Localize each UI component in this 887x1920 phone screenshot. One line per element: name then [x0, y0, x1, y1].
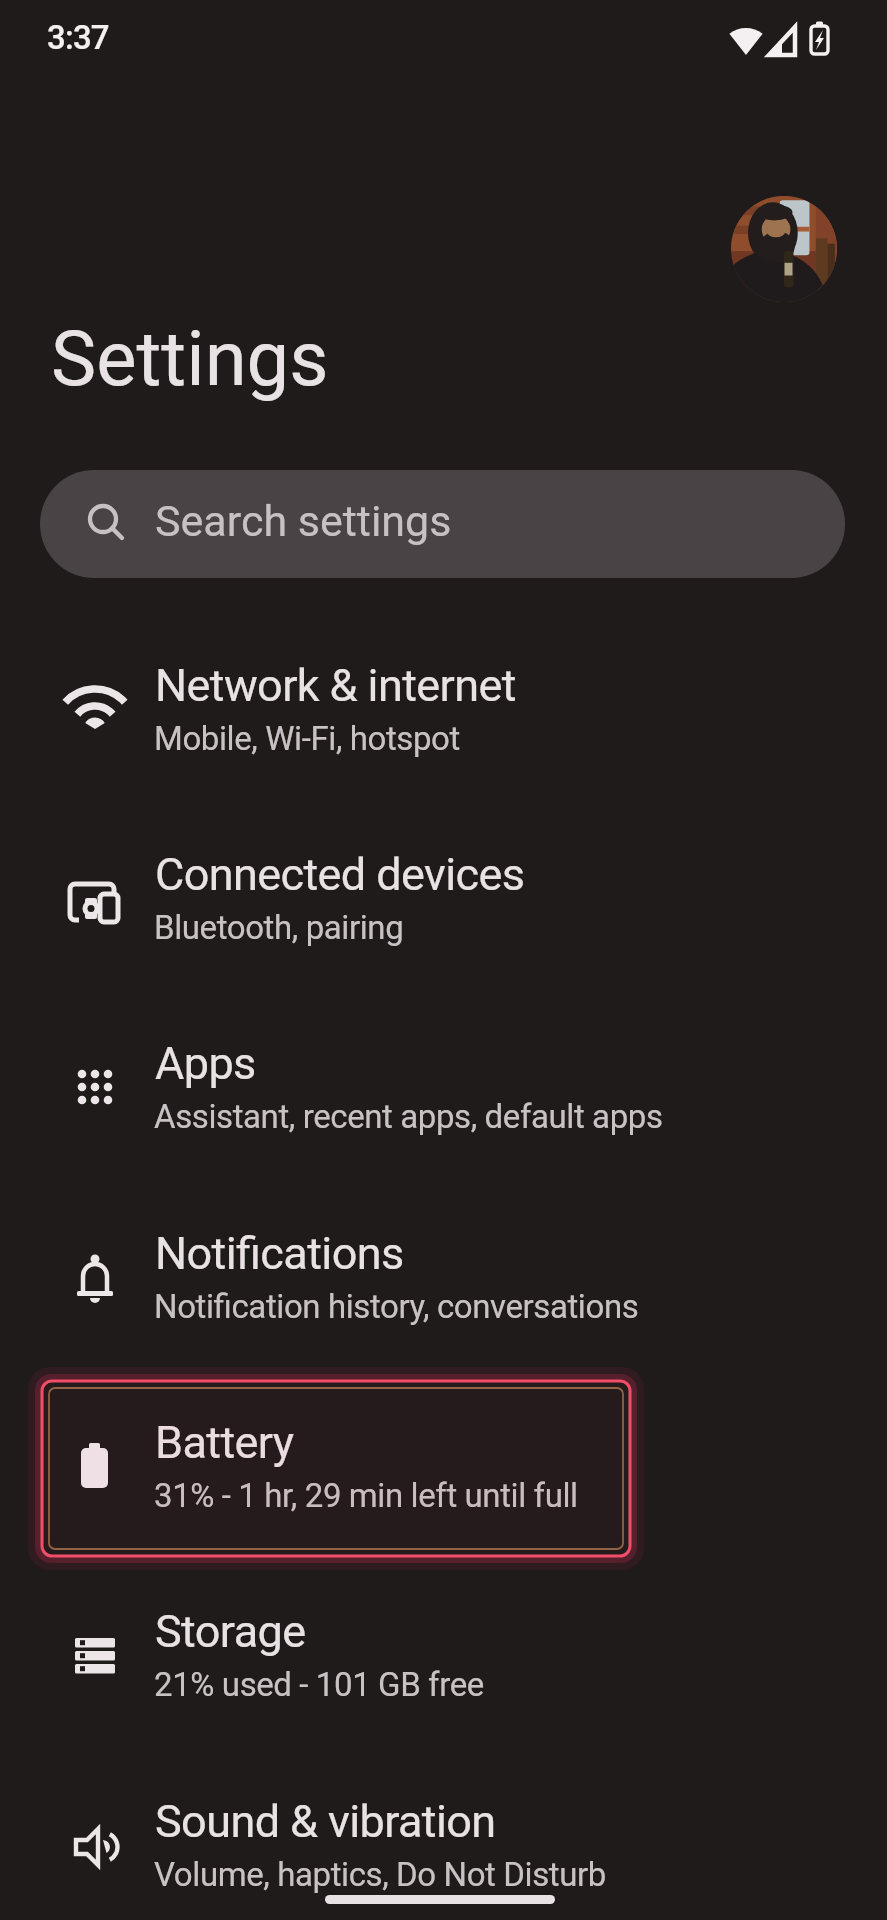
staticText: Search settings: [155, 496, 452, 546]
staticText: Network & internet: [155, 659, 516, 712]
button[interactable]: Apps: [0, 990, 887, 1179]
button[interactable]: Sound & vibration: [0, 1748, 887, 1920]
button[interactable]: Storage: [0, 1558, 887, 1747]
staticText: Notifications: [155, 1227, 404, 1280]
staticText: Storage: [155, 1605, 306, 1658]
staticText: 31% - 1 hr, 29 min left until full: [154, 1476, 578, 1515]
button[interactable]: Notifications: [0, 1180, 887, 1369]
staticText: Assistant, recent apps, default apps: [154, 1097, 663, 1136]
button[interactable]: Battery: [0, 1369, 887, 1558]
staticText: Bluetooth, pairing: [154, 908, 404, 947]
button[interactable]: Search settings: [40, 470, 845, 578]
staticText: 21% used - 101 GB free: [154, 1665, 484, 1704]
staticText: Connected devices: [155, 848, 525, 901]
button[interactable]: Connected devices: [0, 801, 887, 990]
staticText: 3:37: [47, 18, 109, 57]
staticText: Apps: [155, 1037, 256, 1090]
staticText: Battery: [155, 1416, 294, 1469]
staticText: Sound & vibration: [155, 1795, 496, 1848]
staticText: Volume, haptics, Do Not Disturb: [154, 1855, 606, 1894]
button[interactable]: [731, 196, 837, 302]
staticText: Settings: [51, 314, 329, 403]
button[interactable]: Network & internet: [0, 612, 887, 801]
staticText: Mobile, Wi-Fi, hotspot: [154, 719, 460, 758]
staticText: Notification history, conversations: [154, 1287, 639, 1326]
